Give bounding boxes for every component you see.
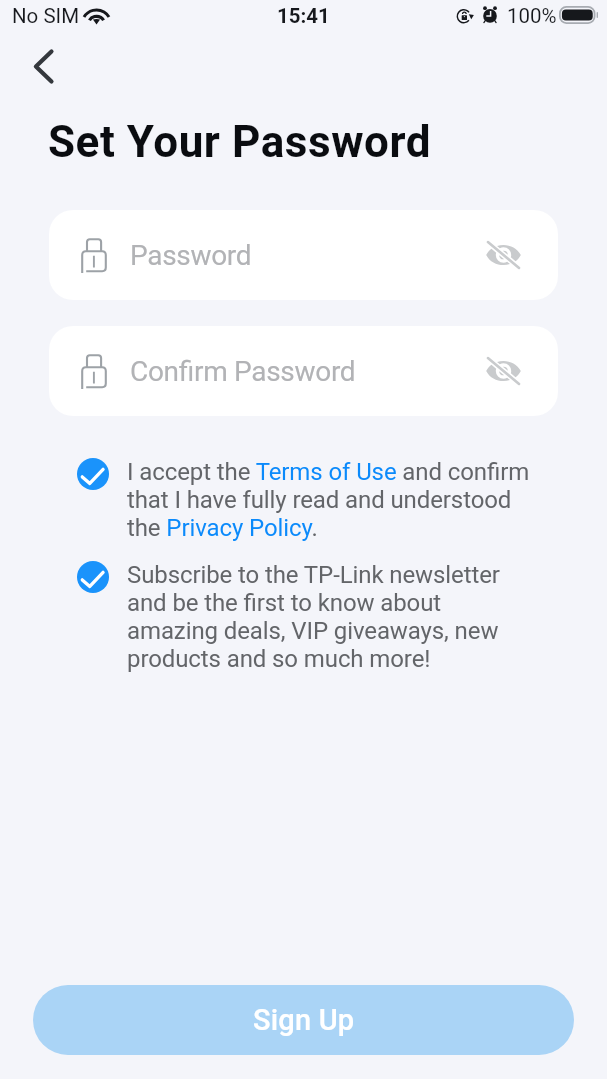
button[interactable]: I accept the Terms of Use and confirm th…	[77, 458, 535, 542]
staticText: No SIM	[12, 4, 80, 28]
staticText: Confirm Password	[130, 355, 356, 388]
staticText: Sign Up	[253, 1003, 355, 1037]
staticText: 100%	[507, 4, 557, 28]
button[interactable]: Sign Up	[33, 985, 574, 1055]
button[interactable]: Back	[15, 38, 71, 94]
staticText: Subscribe to the TP-Link newsletter and …	[127, 561, 535, 673]
button[interactable]: Show password	[478, 230, 528, 280]
button[interactable]: Subscribe to the TP-Link newsletter and …	[77, 561, 535, 673]
staticText: 15:41	[277, 4, 330, 28]
staticText: Password	[130, 239, 252, 272]
button[interactable]: Confirm Password	[49, 326, 558, 416]
staticText: Set Your Password	[48, 116, 432, 168]
button[interactable]: Password	[49, 210, 558, 300]
button[interactable]: Show password	[478, 346, 528, 396]
staticText: I accept the Terms of Use and confirm th…	[127, 458, 535, 542]
